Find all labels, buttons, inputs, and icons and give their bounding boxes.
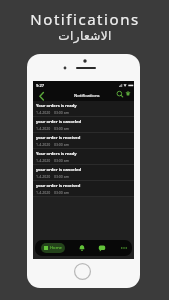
staticText: Your orders is ready [36,103,77,109]
staticText: 1-4-2020 03:00 am [36,142,69,147]
staticText: Notifications [74,93,100,99]
button[interactable]: Your orders is ready [33,101,134,116]
staticText: 1-4-2020 03:00 am [36,190,69,195]
button[interactable]: Delete all [124,89,132,97]
button[interactable]: More [119,243,129,253]
staticText: 1-4-2020 03:00 am [36,126,69,131]
button[interactable]: Chat [97,243,107,253]
staticText: Notifications [30,9,140,29]
button[interactable]: Home [41,243,65,253]
staticText: 1-4-2020 03:00 am [36,174,69,179]
staticText: 1-4-2020 03:00 am [36,158,69,163]
staticText: الاشعارات [58,29,112,43]
staticText: Your orders is ready [36,151,77,157]
button[interactable]: Search [116,90,124,98]
staticText: your order is canceled [36,167,82,173]
button[interactable]: Notifications [77,243,87,253]
staticText: your order is received [36,183,81,189]
button[interactable]: Back [36,91,46,101]
staticText: 9:27 [36,83,44,88]
staticText: Home [50,245,62,251]
button[interactable]: your order is canceled [33,117,134,132]
staticText: 1-4-2020 03:00 am [36,110,69,115]
staticText: your order is received [36,135,81,141]
button[interactable]: Your orders is ready [33,149,134,164]
button[interactable]: your order is received [33,181,134,196]
staticText: your order is canceled [36,119,82,125]
button[interactable]: your order is canceled [33,165,134,180]
button[interactable]: your order is received [33,133,134,148]
